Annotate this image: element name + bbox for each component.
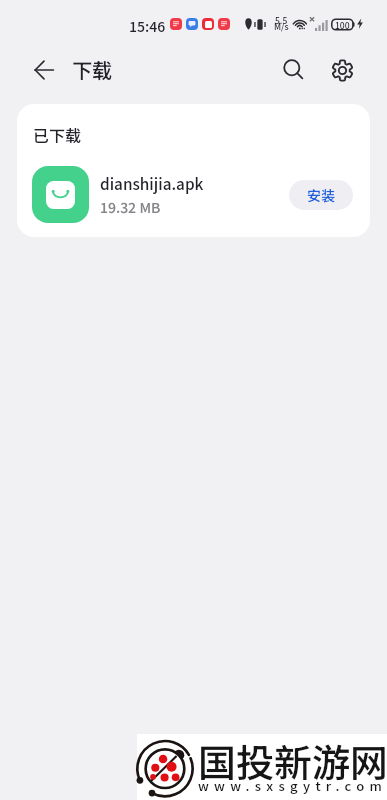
button[interactable]: 安装 (289, 180, 353, 210)
staticText: dianshijia.apk (100, 172, 204, 194)
staticText: 国投新游网 (198, 733, 387, 788)
staticText: 已下载 (33, 123, 82, 146)
staticText: M/s (274, 20, 289, 32)
staticText: 15:46 (129, 16, 166, 36)
staticText: www.sxsgytr.com (198, 776, 387, 795)
button[interactable]: Search (277, 53, 311, 87)
button[interactable]: Settings (325, 53, 359, 87)
button[interactable]: dianshijia.apk (17, 166, 370, 223)
staticText: 下载 (72, 55, 112, 84)
button[interactable]: Back (28, 54, 60, 86)
staticText: 5.5 (275, 14, 288, 26)
staticText: 100 (335, 19, 350, 31)
staticText: 19.32 MB (100, 197, 161, 217)
staticText: 安装 (307, 185, 335, 205)
